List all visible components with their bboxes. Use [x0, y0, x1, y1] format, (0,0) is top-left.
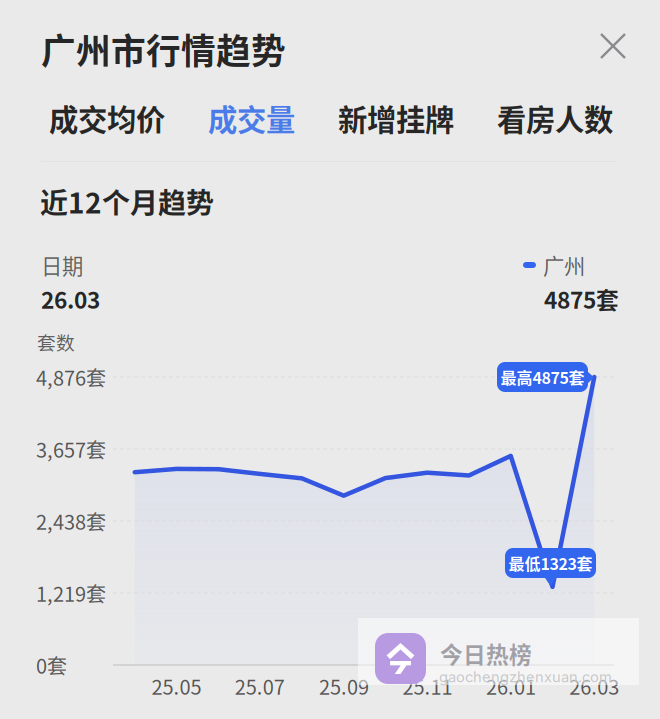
staticText: 25.09 — [319, 671, 369, 700]
staticText: 套数 — [37, 328, 75, 355]
staticText: 26.01 — [486, 671, 536, 700]
staticText: 今日热榜 — [440, 637, 532, 670]
staticText: 成交均价 — [49, 97, 165, 139]
staticText: 新增挂牌 — [338, 97, 454, 139]
staticText: 近12个月趋势 — [40, 181, 214, 221]
staticText: 日期 — [41, 249, 83, 280]
staticText: 0套 — [36, 650, 67, 679]
button[interactable]: 成交量 — [208, 97, 295, 139]
staticText: 4,876套 — [36, 362, 106, 391]
button[interactable]: Close — [591, 24, 635, 68]
staticText: 4875套 — [544, 282, 619, 315]
staticText: 26.03 — [569, 671, 619, 700]
staticText: 广州市行情趋势 — [41, 24, 286, 74]
button[interactable]: 成交均价 — [49, 97, 165, 139]
staticText: 看房人数 — [497, 97, 613, 139]
staticText: 广州 — [543, 249, 585, 280]
staticText: 25.11 — [403, 671, 453, 700]
staticText: gaochengzhenxuan.com — [439, 668, 612, 686]
staticText: 25.05 — [152, 671, 202, 700]
staticText: 最低1323套 — [508, 551, 592, 575]
staticText: 2,438套 — [36, 506, 106, 535]
staticText: 1,219套 — [36, 578, 106, 607]
staticText: 成交量 — [208, 97, 295, 139]
button[interactable]: 看房人数 — [497, 97, 613, 139]
staticText: 26.03 — [41, 282, 100, 315]
button[interactable]: 新增挂牌 — [338, 97, 454, 139]
staticText: 最高4875套 — [500, 365, 584, 389]
staticText: 3,657套 — [36, 434, 106, 463]
staticText: 25.07 — [235, 671, 285, 700]
